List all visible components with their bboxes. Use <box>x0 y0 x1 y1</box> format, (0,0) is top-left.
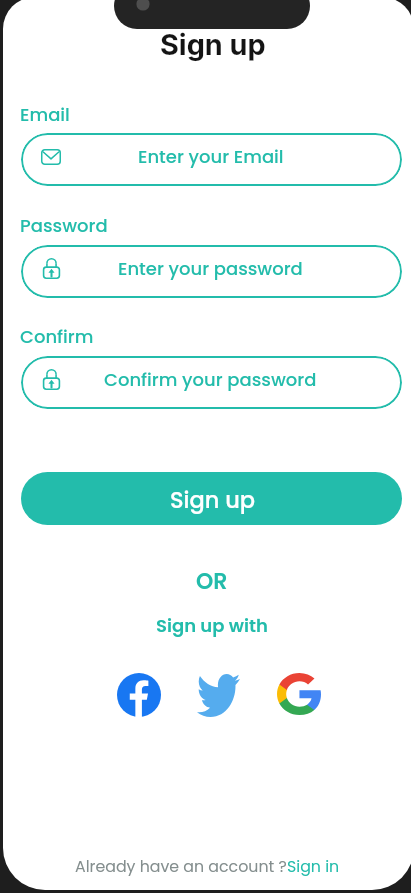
staticText: Enter your Email <box>138 144 284 169</box>
button[interactable]: Confirm your password <box>21 356 402 409</box>
button[interactable]: Enter your Email <box>21 133 402 186</box>
staticText: Sign up <box>170 484 256 515</box>
button[interactable]: Sign up with Twitter <box>195 672 241 718</box>
button[interactable]: Sign up <box>21 472 402 525</box>
staticText: Confirm your password <box>104 367 317 392</box>
staticText: Email <box>20 102 70 127</box>
staticText: Enter your password <box>118 256 303 281</box>
staticText: Sign in <box>287 855 340 877</box>
button[interactable]: Sign up with Facebook <box>116 672 162 718</box>
staticText: Sign up <box>160 27 266 62</box>
button[interactable]: Enter your password <box>21 245 402 298</box>
staticText: Already have an account ? <box>75 855 287 877</box>
staticText: Password <box>20 213 108 238</box>
button[interactable]: Sign in <box>287 855 340 877</box>
staticText: OR <box>196 566 228 597</box>
staticText: Confirm <box>20 324 94 349</box>
button[interactable]: Sign up with Google <box>276 671 322 717</box>
staticText: Sign up with <box>156 613 268 638</box>
